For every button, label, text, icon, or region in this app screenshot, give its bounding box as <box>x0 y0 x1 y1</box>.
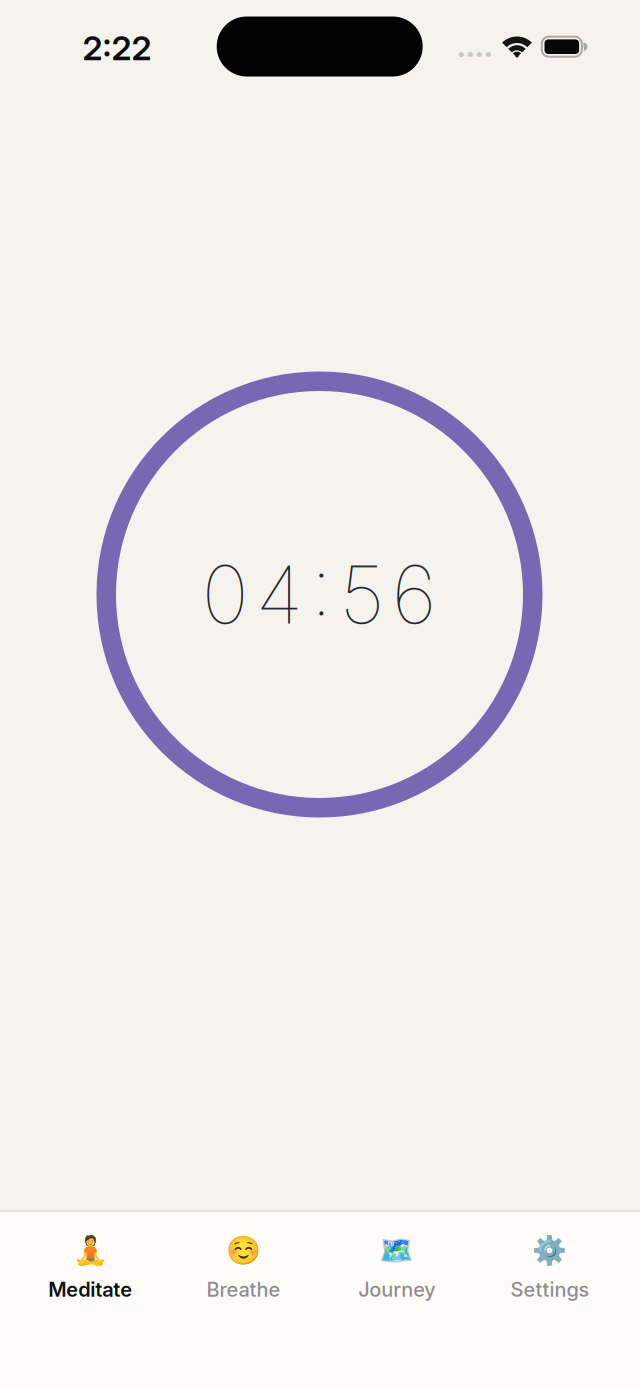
staticText: Breathe <box>206 1277 280 1302</box>
button[interactable]: 🧘 <box>13 1234 167 1302</box>
staticText: ⚙️ <box>532 1234 567 1266</box>
staticText: 2:22 <box>82 28 151 68</box>
staticText: 04:56 <box>201 546 436 643</box>
staticText: Journey <box>358 1277 435 1302</box>
staticText: Settings <box>510 1277 589 1302</box>
staticText: 🗺️ <box>379 1234 414 1266</box>
staticText: ☺️ <box>226 1234 261 1266</box>
staticText: 🧘 <box>73 1234 108 1266</box>
button[interactable]: 🗺️ <box>320 1234 473 1302</box>
button[interactable]: ☺️ <box>167 1234 320 1302</box>
button[interactable]: ⚙️ <box>473 1234 626 1302</box>
staticText: Meditate <box>48 1277 132 1302</box>
